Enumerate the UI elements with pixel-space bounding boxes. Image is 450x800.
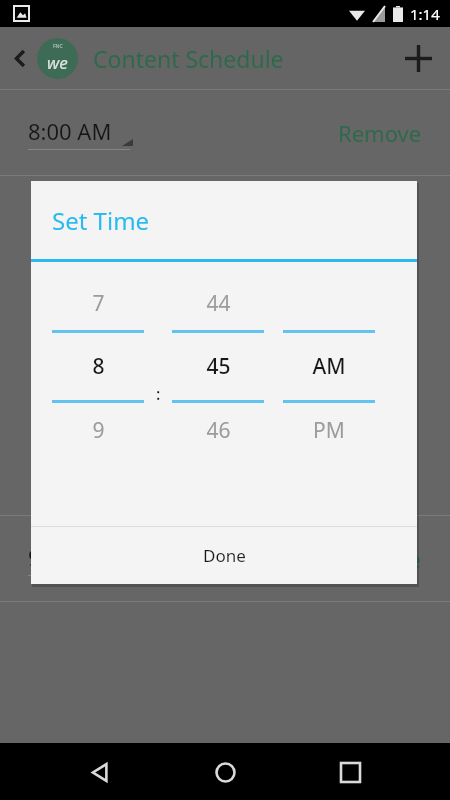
button[interactable]: Back <box>75 747 125 797</box>
staticText: Remove <box>338 118 422 148</box>
staticText: 7 <box>92 289 105 318</box>
button[interactable]: 8:00 AM <box>0 90 450 175</box>
staticText: Remove <box>338 544 422 574</box>
staticText: we <box>47 51 68 74</box>
button[interactable]: 46 <box>172 407 264 453</box>
staticText: : <box>156 383 161 405</box>
staticText: 8:00 AM <box>28 116 112 146</box>
button[interactable]: Navigate up <box>6 44 34 72</box>
staticText: 9 <box>92 416 105 445</box>
button[interactable]: Done <box>31 527 417 584</box>
staticText: AM <box>312 352 346 381</box>
staticText: FNC <box>53 43 63 50</box>
button[interactable]: 9 <box>52 407 144 453</box>
button[interactable]: 45 <box>172 333 264 400</box>
staticText: 46 <box>206 416 231 445</box>
staticText: Set Time <box>52 204 150 237</box>
staticText: PM <box>313 416 345 445</box>
button[interactable]: 44 <box>172 280 264 326</box>
button[interactable]: Add schedule <box>394 34 442 82</box>
button[interactable]: PM <box>283 407 375 453</box>
staticText: 8 <box>92 352 105 381</box>
staticText: 1:14 <box>410 4 440 24</box>
button[interactable]: Home <box>200 747 250 797</box>
staticText: 45 <box>206 352 231 381</box>
button[interactable]: Remove <box>338 118 422 148</box>
button[interactable]: 9:30 AM <box>0 516 450 601</box>
staticText: 44 <box>206 289 231 318</box>
staticText: 9:30 AM <box>28 542 112 572</box>
button[interactable]: 8:00 AM <box>28 116 133 150</box>
button[interactable]: 8 <box>52 333 144 400</box>
button[interactable]: Remove <box>338 544 422 574</box>
button[interactable]: AM <box>283 333 375 400</box>
button[interactable]: Recent apps <box>325 747 375 797</box>
staticText: Done <box>203 544 246 567</box>
button[interactable]: 9:30 AM <box>28 542 133 576</box>
staticText: Content Schedule <box>93 43 284 74</box>
button[interactable]: 7 <box>52 280 144 326</box>
